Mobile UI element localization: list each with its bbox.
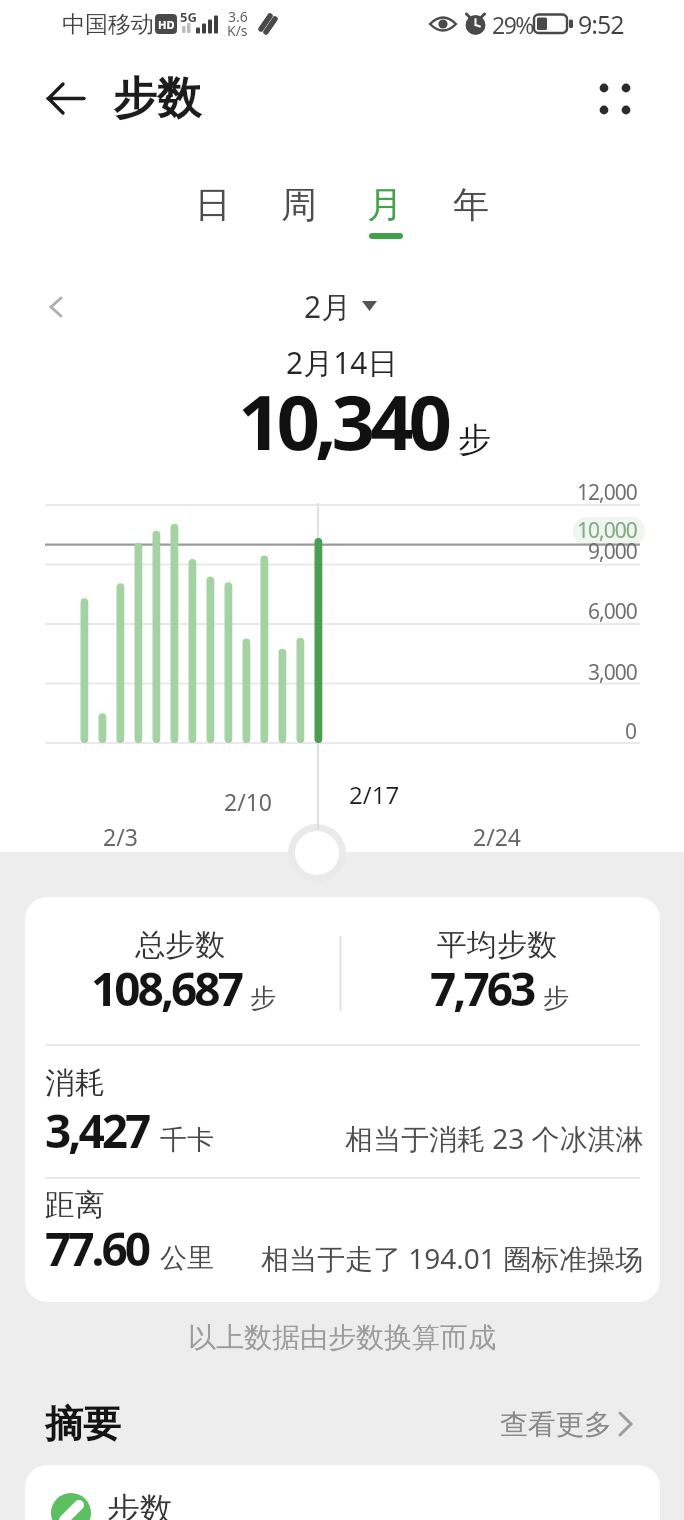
button[interactable]: 2月 <box>0 284 670 328</box>
staticText: 消耗 <box>45 1064 105 1102</box>
staticText: 相当于消耗 23 个冰淇淋 <box>345 1119 644 1157</box>
staticText: 2/24 <box>473 821 522 852</box>
staticText: 中国移动 <box>62 10 154 39</box>
staticText: 9,000 <box>588 537 637 566</box>
staticText: 77.60 <box>45 1217 149 1280</box>
staticText: 3,000 <box>588 658 637 687</box>
staticText: 9:52 <box>578 7 624 41</box>
staticText: 千卡 <box>160 1123 214 1157</box>
staticText: 5G <box>180 8 197 26</box>
staticText: 步 <box>250 982 276 1015</box>
button[interactable] <box>25 1465 660 1520</box>
staticText: 步数 <box>107 1489 173 1520</box>
staticText: 日 <box>195 182 231 227</box>
button[interactable] <box>36 286 76 326</box>
staticText: 公里 <box>160 1241 214 1275</box>
staticText: 6,000 <box>588 597 637 626</box>
button[interactable]: 日 <box>170 180 256 228</box>
staticText: 29% <box>492 9 533 40</box>
staticText: 2月14日 <box>286 342 398 383</box>
staticText: 月 <box>367 182 403 227</box>
staticText: 2/3 <box>103 821 138 852</box>
staticText: 2月 <box>304 286 352 327</box>
button[interactable] <box>36 72 96 126</box>
button[interactable]: 查看更多 <box>480 1398 650 1450</box>
button[interactable]: 月 <box>342 180 428 228</box>
staticText: K/s <box>227 21 248 40</box>
button[interactable] <box>588 72 642 126</box>
button[interactable]: 年 <box>428 180 514 228</box>
staticText: 总步数 <box>135 926 225 964</box>
staticText: 距离 <box>45 1186 105 1224</box>
staticText: HD <box>158 17 175 32</box>
button[interactable]: 周 <box>256 180 342 228</box>
staticText: 相当于走了 194.01 圈标准操场 <box>261 1239 644 1277</box>
staticText: 以上数据由步数换算而成 <box>188 1320 496 1355</box>
staticText: 3,427 <box>45 1099 149 1162</box>
staticText: 10,340 <box>238 369 448 473</box>
staticText: 2/10 <box>224 786 273 817</box>
staticText: 10,000 <box>577 516 637 545</box>
staticText: 步数 <box>113 71 201 126</box>
staticText: 摘要 <box>45 1400 121 1448</box>
staticText: 12,000 <box>577 478 637 507</box>
staticText: 周 <box>281 182 317 227</box>
staticText: 步 <box>458 419 491 461</box>
staticText: 7,763 <box>430 957 534 1020</box>
staticText: 108,687 <box>91 957 241 1020</box>
staticText: 平均步数 <box>437 926 557 964</box>
staticText: 0 <box>625 717 637 746</box>
staticText: 2/17 <box>349 778 400 811</box>
staticText: 3.6 <box>228 7 248 26</box>
staticText: 年 <box>453 182 489 227</box>
staticText: 步 <box>543 982 569 1015</box>
staticText: 查看更多 <box>500 1407 612 1442</box>
